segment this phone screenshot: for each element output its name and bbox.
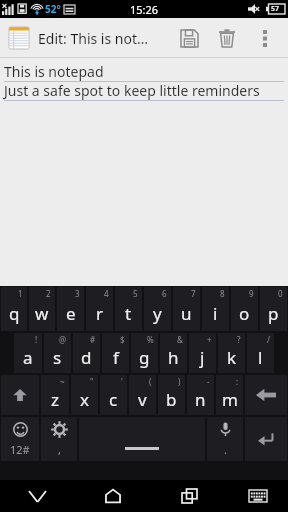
staticText: v: [138, 388, 147, 411]
staticText: h: [168, 346, 179, 369]
button[interactable]: $: [102, 333, 129, 373]
staticText: w: [35, 302, 49, 325]
staticText: 5: [133, 288, 138, 299]
staticText: e: [66, 302, 76, 325]
staticText: 2: [46, 288, 51, 299]
staticText: b: [166, 388, 177, 411]
staticText: +: [207, 334, 212, 345]
staticText: l: [258, 346, 263, 369]
button[interactable]: ?: [218, 333, 245, 373]
staticText: d: [81, 346, 92, 369]
staticText: -: [207, 376, 210, 387]
staticText: c: [109, 388, 118, 411]
button[interactable]: Backspace: [245, 375, 287, 415]
staticText: !: [35, 334, 38, 345]
button[interactable]: Delete: [208, 18, 246, 58]
button[interactable]: 8: [202, 287, 229, 331]
staticText: %: [147, 334, 154, 345]
button[interactable]: 7: [173, 287, 200, 331]
staticText: 1: [18, 288, 23, 299]
button[interactable]: -: [187, 375, 214, 415]
button[interactable]: !: [14, 333, 42, 373]
staticText: 3: [75, 288, 80, 299]
staticText: o: [239, 302, 250, 325]
button[interactable]: 9: [231, 287, 258, 331]
button[interactable]: 4: [86, 287, 113, 331]
button[interactable]: 1: [1, 287, 27, 331]
staticText: ": [90, 376, 94, 387]
staticText: z: [51, 388, 59, 411]
button[interactable]: Shift: [1, 375, 39, 415]
staticText: i: [213, 302, 218, 325]
staticText: 15:26: [130, 2, 159, 17]
button[interactable]: Home: [75, 480, 151, 512]
button[interactable]: /: [247, 333, 274, 373]
button[interactable]: Emoji: [1, 417, 39, 461]
button[interactable]: Settings: [41, 417, 77, 461]
staticText: /: [267, 334, 270, 345]
staticText: 6: [162, 288, 167, 299]
staticText: @: [59, 334, 67, 345]
button[interactable]: &: [160, 333, 187, 373]
button[interactable]: Switch keyboard: [227, 480, 288, 512]
button[interactable]: 2: [29, 287, 55, 331]
button[interactable]: More options: [246, 18, 284, 58]
button[interactable]: Back: [0, 480, 75, 512]
staticText: g: [139, 346, 150, 369]
staticText: #: [90, 334, 96, 345]
staticText: j: [200, 346, 205, 369]
staticText: 12#: [10, 442, 30, 457]
staticText: ~: [60, 376, 65, 387]
button[interactable]: This is notepad: [0, 58, 288, 286]
staticText: u: [181, 302, 192, 325]
staticText: a: [23, 346, 33, 369]
staticText: m: [222, 388, 238, 411]
staticText: f: [113, 346, 119, 369]
button[interactable]: 6: [144, 287, 171, 331]
staticText: y: [153, 302, 162, 325]
button[interactable]: @: [44, 333, 71, 373]
staticText: ): [178, 376, 181, 387]
staticText: r: [96, 302, 104, 325]
staticText: t: [125, 302, 132, 325]
button[interactable]: Edit: This is not…: [9, 18, 170, 58]
staticText: This is notepad: [4, 62, 104, 81]
button[interactable]: (: [129, 375, 156, 415]
button[interactable]: ): [158, 375, 185, 415]
button[interactable]: Recents: [151, 480, 227, 512]
button[interactable]: :: [216, 375, 243, 415]
staticText: k: [227, 346, 237, 369]
button[interactable]: ": [71, 375, 98, 415]
staticText: .: [224, 442, 227, 457]
button[interactable]: Voice input: [207, 417, 243, 461]
staticText: 7: [191, 288, 196, 299]
staticText: p: [268, 302, 279, 325]
button[interactable]: ': [100, 375, 127, 415]
staticText: $: [120, 334, 125, 345]
button[interactable]: #: [73, 333, 100, 373]
button[interactable]: %: [131, 333, 158, 373]
staticText: q: [9, 302, 20, 325]
button[interactable]: 5: [115, 287, 142, 331]
button[interactable]: 0: [260, 287, 287, 331]
staticText: 57: [271, 4, 280, 14]
staticText: 8: [220, 288, 225, 299]
staticText: x: [80, 388, 89, 411]
staticText: Just a safe spot to keep little reminder…: [4, 81, 260, 100]
button[interactable]: ~: [41, 375, 69, 415]
button[interactable]: Space: [79, 417, 205, 461]
staticText: n: [195, 388, 206, 411]
staticText: ,: [58, 442, 61, 457]
button[interactable]: 3: [57, 287, 84, 331]
button[interactable]: Enter: [245, 417, 287, 461]
staticText: 4: [104, 288, 109, 299]
staticText: 0: [278, 288, 283, 299]
staticText: ?: [237, 334, 241, 345]
staticText: 9: [249, 288, 254, 299]
staticText: :: [236, 376, 239, 387]
button[interactable]: +: [189, 333, 216, 373]
staticText: &: [177, 334, 183, 345]
staticText: 52°: [45, 2, 61, 16]
staticText: ': [121, 376, 123, 387]
button[interactable]: Save: [170, 18, 208, 58]
